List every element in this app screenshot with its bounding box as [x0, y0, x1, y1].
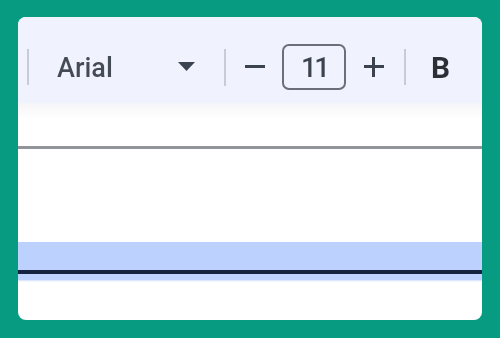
button[interactable]: Increase font size [351, 44, 396, 89]
button[interactable]: Bold [418, 45, 463, 90]
button[interactable]: Font size 11 [283, 45, 345, 89]
staticText: Arial [57, 52, 113, 84]
button[interactable]: Font family: Arial [48, 41, 200, 92]
staticText: B [431, 50, 451, 85]
button[interactable]: Decrease font size [232, 44, 277, 89]
staticText: 11 [301, 51, 328, 84]
